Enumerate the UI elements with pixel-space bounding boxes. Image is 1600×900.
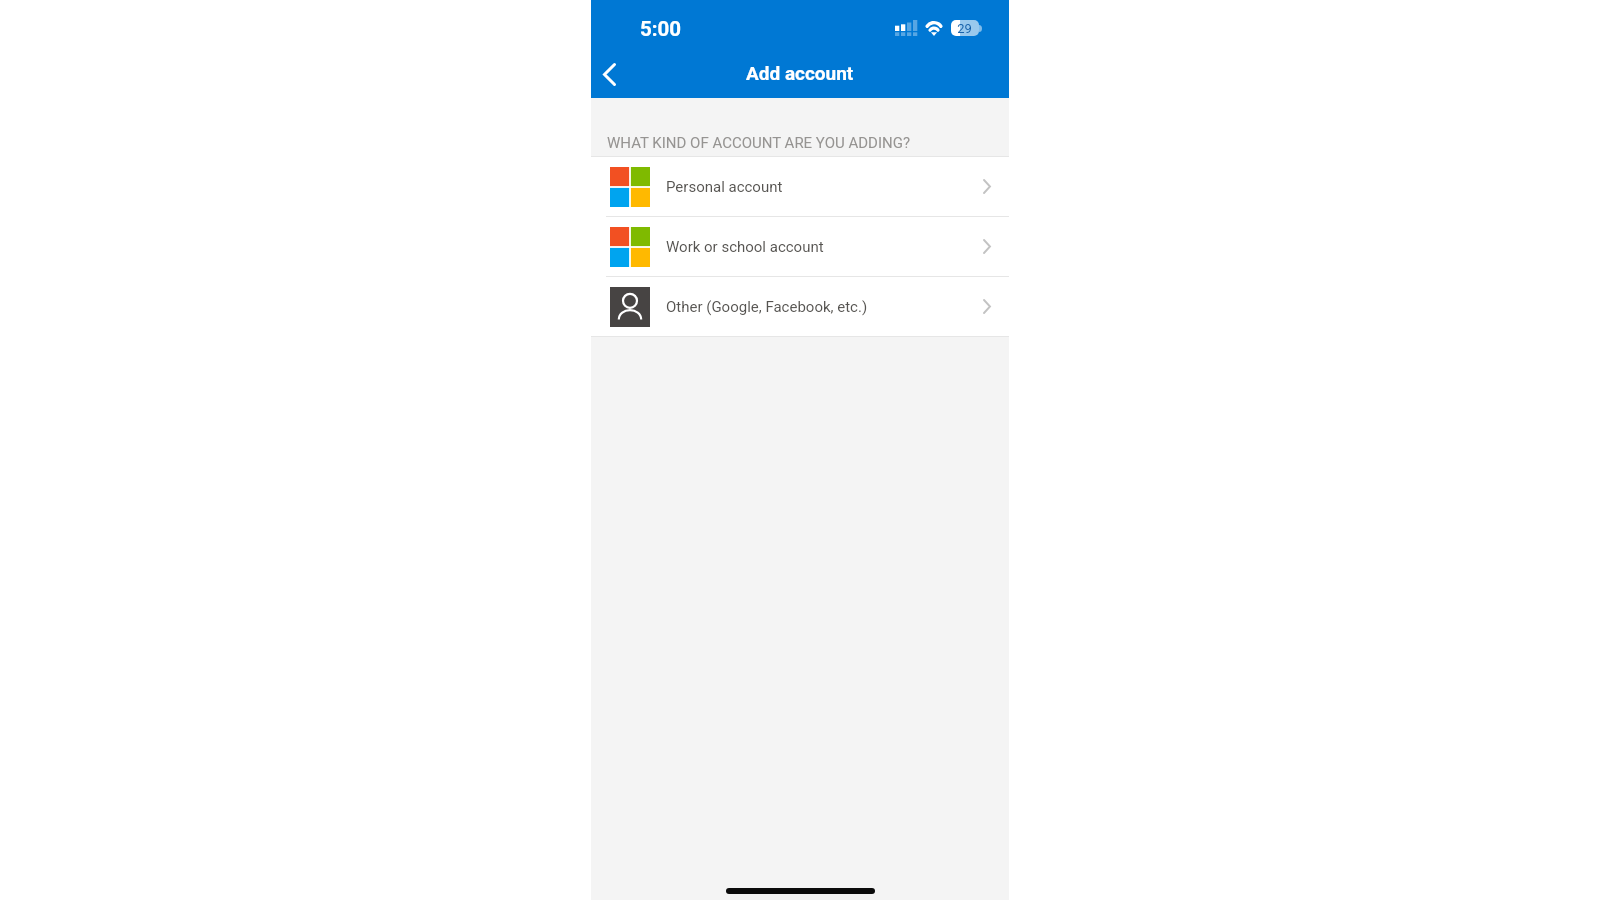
staticText: Other (Google, Facebook, etc.) — [666, 298, 868, 316]
staticText: 29 — [957, 21, 972, 36]
staticText: Work or school account — [666, 238, 824, 256]
button[interactable]: Personal account — [591, 157, 1009, 216]
button[interactable]: Other (Google, Facebook, etc.) — [591, 277, 1009, 336]
staticText: Personal account — [666, 178, 783, 196]
staticText: WHAT KIND OF ACCOUNT ARE YOU ADDING? — [607, 134, 910, 152]
staticText: 5:00 — [640, 17, 682, 41]
staticText: Add account — [746, 62, 854, 84]
button[interactable]: Back — [589, 54, 629, 94]
button[interactable]: Work or school account — [591, 217, 1009, 276]
